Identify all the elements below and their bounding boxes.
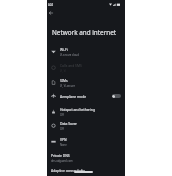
staticText: dns.adguard.com [51, 159, 73, 163]
staticText: Vi, Vi [60, 69, 66, 73]
staticText: SIMs [60, 78, 68, 83]
staticText: Private DNS [51, 153, 70, 158]
staticText: Off [60, 127, 64, 131]
staticText: Vi-secure cloud [60, 53, 79, 57]
staticText: Wi-Fi [60, 47, 68, 52]
staticText: Off [60, 113, 64, 117]
button[interactable]: SIMs [47, 75, 125, 91]
button[interactable]: Hotspot and tethering [47, 104, 125, 120]
staticText: Vi, Vi-secure [60, 84, 75, 88]
staticText: Aeroplane mode [60, 94, 87, 99]
button[interactable]: Calls and SMS [47, 60, 125, 76]
staticText: Data Saver [60, 121, 77, 126]
button[interactable]: Aeroplane mode [47, 90, 125, 102]
button[interactable]: Back [46, 8, 56, 18]
button[interactable]: Wi-Fi [47, 44, 125, 60]
staticText: None [60, 143, 67, 147]
staticText: 4:24 [48, 3, 53, 6]
staticText: Network and internet [52, 28, 117, 37]
button[interactable]: Data Saver [47, 118, 125, 134]
button[interactable]: VPN [47, 134, 125, 150]
button[interactable]: Aeroplane mode [112, 94, 121, 98]
button[interactable]: Adaptive connectivity [47, 164, 125, 176]
staticText: Calls and SMS [60, 63, 82, 68]
staticText: Hotspot and tethering [60, 107, 95, 112]
staticText: Adaptive connectivity [51, 168, 85, 173]
staticText: VPN [60, 137, 67, 142]
button[interactable]: Private DNS [47, 150, 125, 166]
